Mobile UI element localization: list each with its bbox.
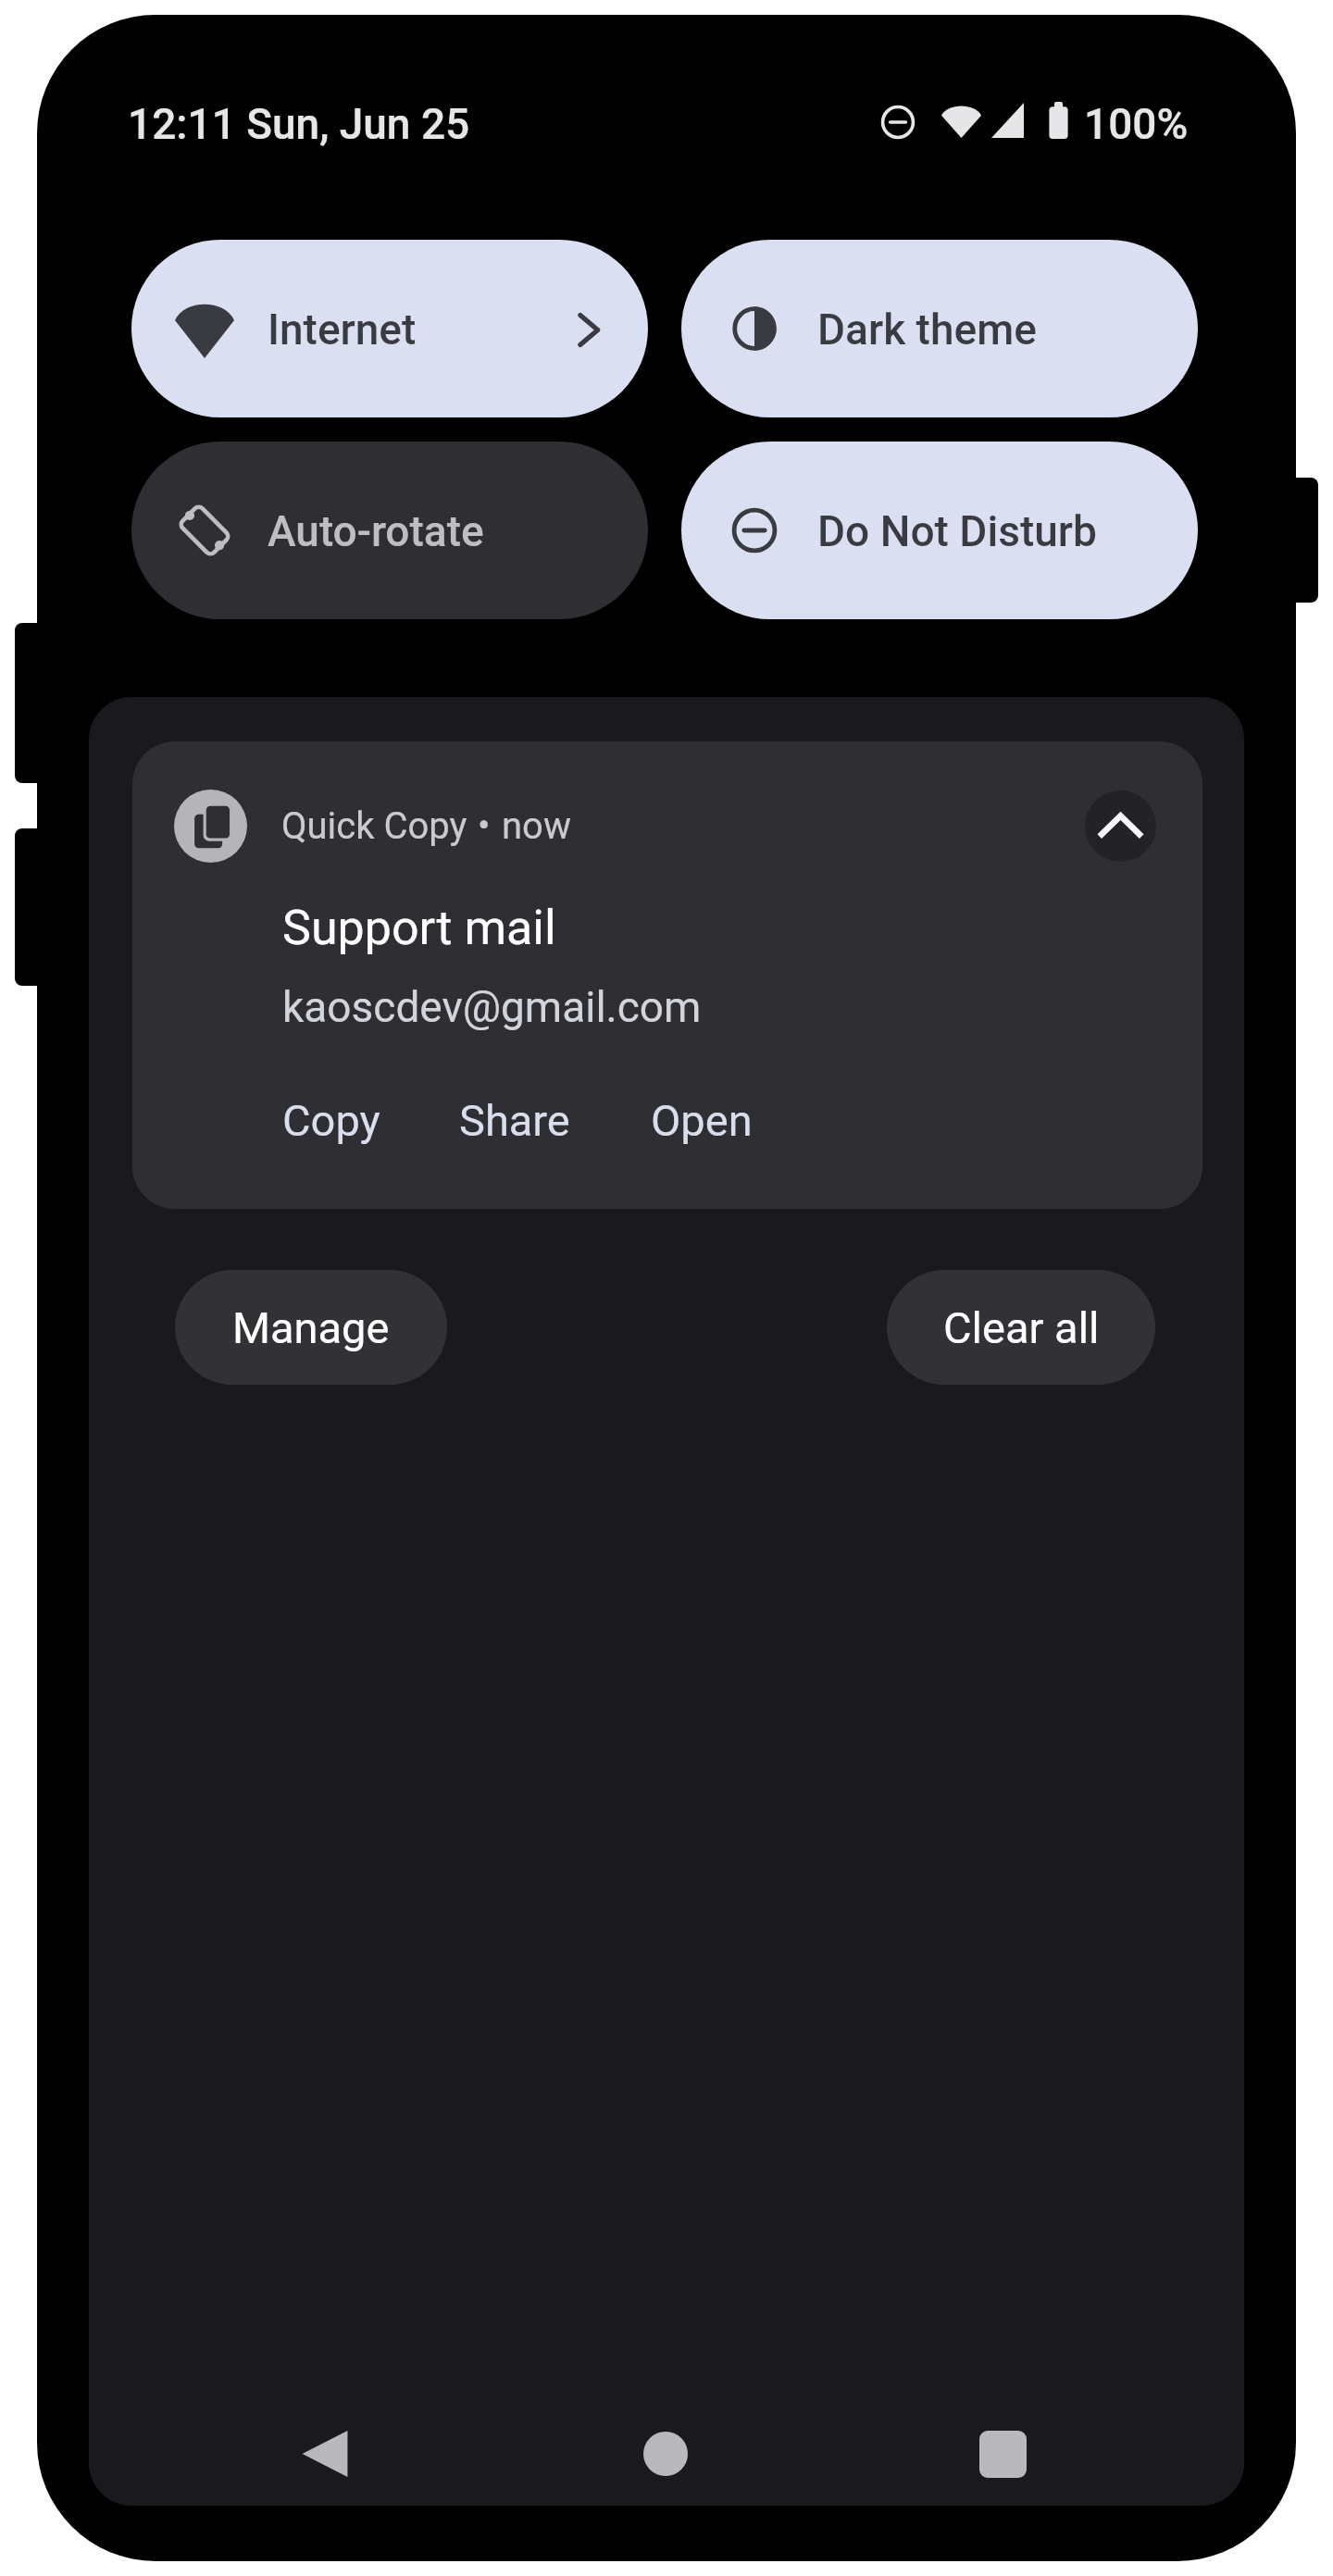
- button[interactable]: Manage: [175, 1270, 447, 1385]
- button[interactable]: Collapse notification: [1085, 790, 1156, 862]
- button[interactable]: Do Not Disturb: [681, 442, 1198, 619]
- staticText: Do Not Disturb: [817, 506, 1097, 556]
- button[interactable]: Share: [459, 1095, 570, 1146]
- button[interactable]: Recents: [979, 2431, 1027, 2478]
- staticText: Open: [651, 1095, 753, 1146]
- staticText: •: [478, 804, 491, 848]
- staticText: Share: [459, 1095, 570, 1146]
- button[interactable]: Open: [651, 1095, 753, 1146]
- staticText: Clear all: [943, 1302, 1100, 1353]
- staticText: Dark theme: [817, 305, 1037, 355]
- staticText: Copy: [282, 1095, 380, 1146]
- button[interactable]: Dark theme: [681, 240, 1198, 417]
- staticText: Support mail: [282, 900, 556, 956]
- staticText: Manage: [232, 1302, 390, 1353]
- button[interactable]: Copy: [282, 1095, 380, 1146]
- staticText: now: [502, 804, 571, 848]
- staticText: kaoscdev@gmail.com: [282, 982, 702, 1032]
- staticText: Internet: [268, 305, 417, 355]
- staticText: Quick Copy: [281, 804, 467, 848]
- staticText: Auto-rotate: [268, 506, 484, 556]
- button[interactable]: Quick Copy: [132, 741, 1202, 1209]
- button[interactable]: Internet: [131, 240, 648, 417]
- button[interactable]: Clear all: [887, 1270, 1155, 1385]
- button[interactable]: Auto-rotate: [131, 442, 648, 619]
- button[interactable]: Home: [643, 2432, 688, 2476]
- staticText: 12:11 Sun, Jun 25: [128, 99, 470, 149]
- button[interactable]: Back: [301, 2430, 349, 2478]
- staticText: 100%: [1084, 99, 1189, 149]
